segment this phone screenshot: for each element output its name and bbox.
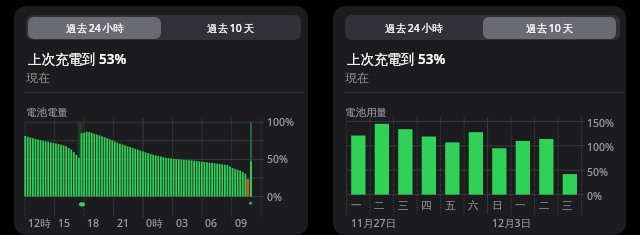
staticText: 12月3日: [492, 216, 532, 230]
button[interactable]: 過去 24 小時: [28, 17, 161, 39]
staticText: 六: [468, 199, 479, 212]
button[interactable]: 過去 10 天: [164, 17, 297, 39]
staticText: 上次充電到 53%: [347, 50, 446, 68]
staticText: 0時: [146, 216, 163, 230]
staticText: 0%: [587, 189, 602, 203]
staticText: 電池用量: [345, 106, 387, 119]
staticText: 12時: [28, 216, 51, 230]
staticText: 三: [562, 199, 573, 212]
staticText: 09: [235, 216, 248, 230]
staticText: 二: [374, 199, 385, 212]
staticText: 100%: [587, 140, 614, 154]
staticText: 上次充電到 53%: [28, 50, 127, 68]
staticText: 四: [421, 199, 432, 212]
staticText: 日: [492, 199, 503, 212]
button[interactable]: 過去 10 天: [483, 17, 616, 39]
staticText: 11月27日: [351, 216, 397, 230]
staticText: 二: [539, 199, 550, 212]
staticText: 過去 24 小時: [66, 21, 124, 35]
staticText: 100%: [267, 115, 294, 129]
staticText: 一: [515, 199, 526, 212]
staticText: 03: [176, 216, 189, 230]
staticText: 過去 24 小時: [385, 21, 443, 35]
staticText: 五: [445, 199, 456, 212]
staticText: 三: [398, 199, 409, 212]
staticText: 150%: [587, 116, 614, 130]
staticText: 現在: [26, 70, 50, 85]
staticText: 21: [117, 216, 130, 230]
staticText: 50%: [267, 152, 288, 166]
staticText: 現在: [345, 70, 369, 85]
staticText: 18: [87, 216, 100, 230]
staticText: 15: [58, 216, 71, 230]
staticText: 一: [351, 199, 362, 212]
staticText: 0%: [267, 190, 282, 204]
staticText: 50%: [587, 165, 608, 179]
staticText: 06: [205, 216, 218, 230]
staticText: 過去 10 天: [526, 21, 573, 35]
staticText: 電池電量: [26, 106, 68, 119]
button[interactable]: 過去 24 小時: [347, 17, 480, 39]
staticText: 過去 10 天: [207, 21, 254, 35]
